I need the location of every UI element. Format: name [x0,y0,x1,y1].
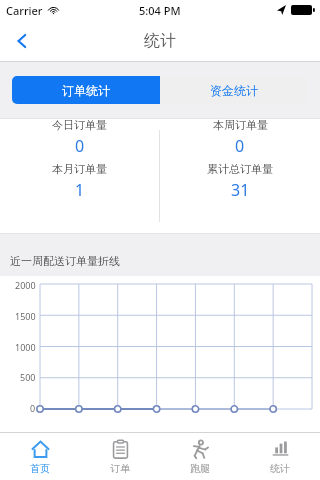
staticText: 订单统计 [62,83,110,98]
button[interactable]: Back [0,20,44,62]
button[interactable]: 跑腿 [160,439,240,475]
staticText: 跑腿 [190,462,210,475]
staticText: 订单 [110,462,130,475]
staticText: 统计 [270,462,290,475]
staticText: 今日订单量 [52,118,107,132]
staticText: 本周订单量 [213,118,268,132]
staticText: 0 [75,135,85,157]
button[interactable]: 订单 [80,439,160,475]
staticText: 近一周配送订单量折线 [10,254,120,268]
staticText: 31 [231,179,250,201]
staticText: 首页 [30,462,50,475]
staticText: Carrier [6,3,43,18]
staticText: 1000 [15,341,36,353]
staticText: 2000 [15,279,36,291]
button[interactable]: 订单统计 [12,76,160,104]
staticText: 资金统计 [210,83,258,98]
button[interactable]: 统计 [240,439,320,475]
staticText: 1500 [15,310,36,322]
staticText: 500 [20,371,36,383]
staticText: 0 [30,402,36,414]
staticText: 0 [235,135,245,157]
button[interactable]: 本周订单量 [160,118,320,201]
button[interactable]: 今日订单量 [0,118,159,201]
button[interactable]: 首页 [0,439,80,475]
staticText: 本月订单量 [52,162,107,176]
staticText: 累计总订单量 [207,162,273,176]
staticText: 统计 [144,31,176,51]
staticText: 5:04 PM [139,3,181,18]
button[interactable]: 资金统计 [160,76,308,104]
staticText: 1 [75,179,85,201]
